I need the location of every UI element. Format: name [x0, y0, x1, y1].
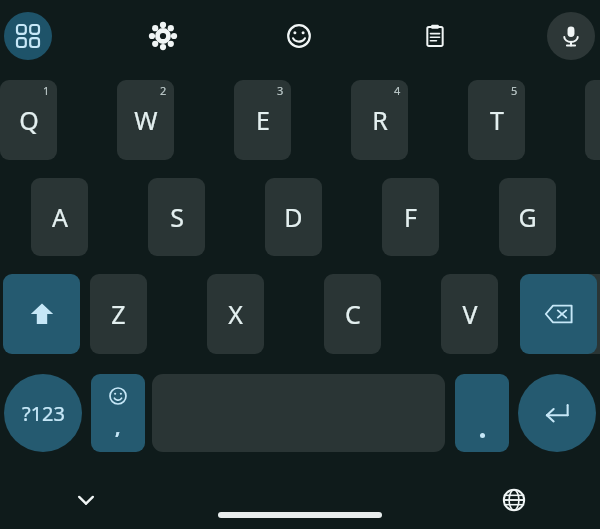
staticText: G [518, 200, 537, 234]
button[interactable]: Backspace [520, 274, 597, 354]
button[interactable]: F [382, 178, 439, 256]
button[interactable]: Y [585, 80, 600, 160]
button[interactable]: S [148, 178, 205, 256]
staticText: D [284, 200, 303, 234]
staticText: Q [19, 103, 39, 137]
staticText: E [256, 103, 270, 137]
button[interactable]: Enter [518, 374, 596, 452]
button[interactable]: Hide keyboard [64, 478, 108, 522]
button[interactable]: B [558, 274, 600, 354]
button[interactable]: R [351, 80, 408, 160]
button[interactable]: X [207, 274, 264, 354]
button[interactable]: C [324, 274, 381, 354]
staticText: 2 [160, 83, 167, 98]
staticText: Z [111, 297, 126, 331]
button[interactable]: Change language [492, 478, 536, 522]
button[interactable]: Emoji [275, 12, 323, 60]
button[interactable]: V [441, 274, 498, 354]
staticText: C [345, 297, 361, 331]
button[interactable]: E [234, 80, 291, 160]
staticText: 5 [511, 83, 518, 98]
button[interactable] [455, 374, 509, 452]
button[interactable]: G [499, 178, 556, 256]
staticText: V [462, 297, 478, 331]
button[interactable]: W [117, 80, 174, 160]
staticText: 4 [394, 83, 401, 98]
button[interactable]: A [31, 178, 88, 256]
button[interactable]: T [468, 80, 525, 160]
staticText: 1 [43, 83, 50, 98]
staticText: T [490, 103, 504, 137]
staticText: R [372, 103, 388, 137]
button[interactable]: Q [0, 80, 57, 160]
button[interactable]: Apps [4, 12, 52, 60]
staticText: 3 [277, 83, 284, 98]
button[interactable]: Voice input [547, 12, 595, 60]
staticText: F [404, 200, 417, 234]
button[interactable]: Settings [139, 12, 187, 60]
button[interactable]: Clipboard [411, 12, 459, 60]
staticText: ?123 [22, 400, 65, 427]
button[interactable]: Shift [3, 274, 80, 354]
button[interactable]: Z [90, 274, 147, 354]
staticText: S [170, 200, 184, 234]
staticText: X [228, 297, 243, 331]
button[interactable]: ?123 [4, 374, 82, 452]
button[interactable]: Emoji and comma [91, 374, 145, 452]
button[interactable]: D [265, 178, 322, 256]
staticText: A [52, 200, 68, 234]
staticText: , [115, 414, 121, 440]
staticText: W [134, 103, 158, 137]
